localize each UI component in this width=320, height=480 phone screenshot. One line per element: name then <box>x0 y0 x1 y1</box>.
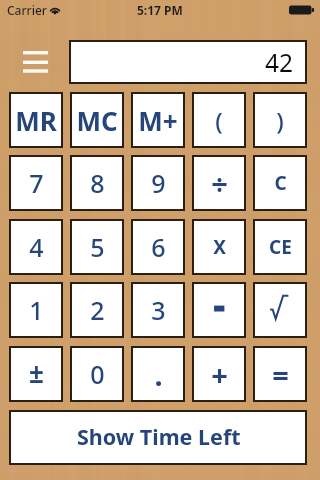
staticText: CE <box>269 234 292 260</box>
staticText: C <box>274 170 287 196</box>
button[interactable]: . <box>131 346 185 402</box>
staticText: 6 <box>151 230 166 264</box>
button[interactable]: 8 <box>70 155 124 211</box>
staticText: + <box>211 355 228 394</box>
button[interactable]: 42 <box>69 40 307 84</box>
staticText: MC <box>76 103 118 138</box>
staticText: X <box>213 234 226 260</box>
staticText: 2 <box>90 293 105 327</box>
staticText: ) <box>276 104 284 137</box>
button[interactable]: X <box>192 219 246 275</box>
button[interactable]: ÷ <box>192 155 246 211</box>
button[interactable]: = <box>253 346 307 402</box>
button[interactable]: 2 <box>70 282 124 338</box>
staticText: 5 <box>90 230 105 264</box>
staticText: . <box>154 355 163 394</box>
button[interactable]: ) <box>253 92 307 148</box>
staticText: ÷ <box>211 164 228 203</box>
staticText: 42 <box>265 46 294 79</box>
button[interactable]: + <box>192 346 246 402</box>
button[interactable]: 3 <box>131 282 185 338</box>
button[interactable]: 6 <box>131 219 185 275</box>
button[interactable]: 0 <box>70 346 124 402</box>
button[interactable]: CE <box>253 219 307 275</box>
staticText: 1 <box>29 293 44 327</box>
button[interactable]: 5 <box>70 219 124 275</box>
staticText: 8 <box>90 166 105 200</box>
staticText: 7 <box>29 166 44 200</box>
staticText: Show Time Left <box>77 422 241 451</box>
button[interactable]: Minus <box>192 282 246 338</box>
staticText: 4 <box>29 230 44 264</box>
button[interactable]: C <box>253 155 307 211</box>
button[interactable]: 9 <box>131 155 185 211</box>
staticText: 5:17 PM <box>137 2 183 18</box>
staticText: ± <box>29 355 44 390</box>
staticText: 3 <box>151 293 166 327</box>
button[interactable]: Show Time Left <box>9 410 307 465</box>
staticText: 0 <box>90 357 105 391</box>
staticText: Carrier <box>7 2 47 18</box>
button[interactable]: ± <box>9 346 63 402</box>
button[interactable]: Menu <box>17 44 54 80</box>
button[interactable]: 1 <box>9 282 63 338</box>
button[interactable]: ( <box>192 92 246 148</box>
staticText: M+ <box>138 103 178 138</box>
button[interactable]: Square root <box>253 282 307 338</box>
staticText: ( <box>215 104 223 137</box>
staticText: MR <box>15 103 57 138</box>
staticText: 9 <box>151 166 166 200</box>
staticText: = <box>272 355 289 394</box>
button[interactable]: 7 <box>9 155 63 211</box>
button[interactable]: MC <box>70 92 124 148</box>
button[interactable]: 4 <box>9 219 63 275</box>
button[interactable]: MR <box>9 92 63 148</box>
button[interactable]: M+ <box>131 92 185 148</box>
